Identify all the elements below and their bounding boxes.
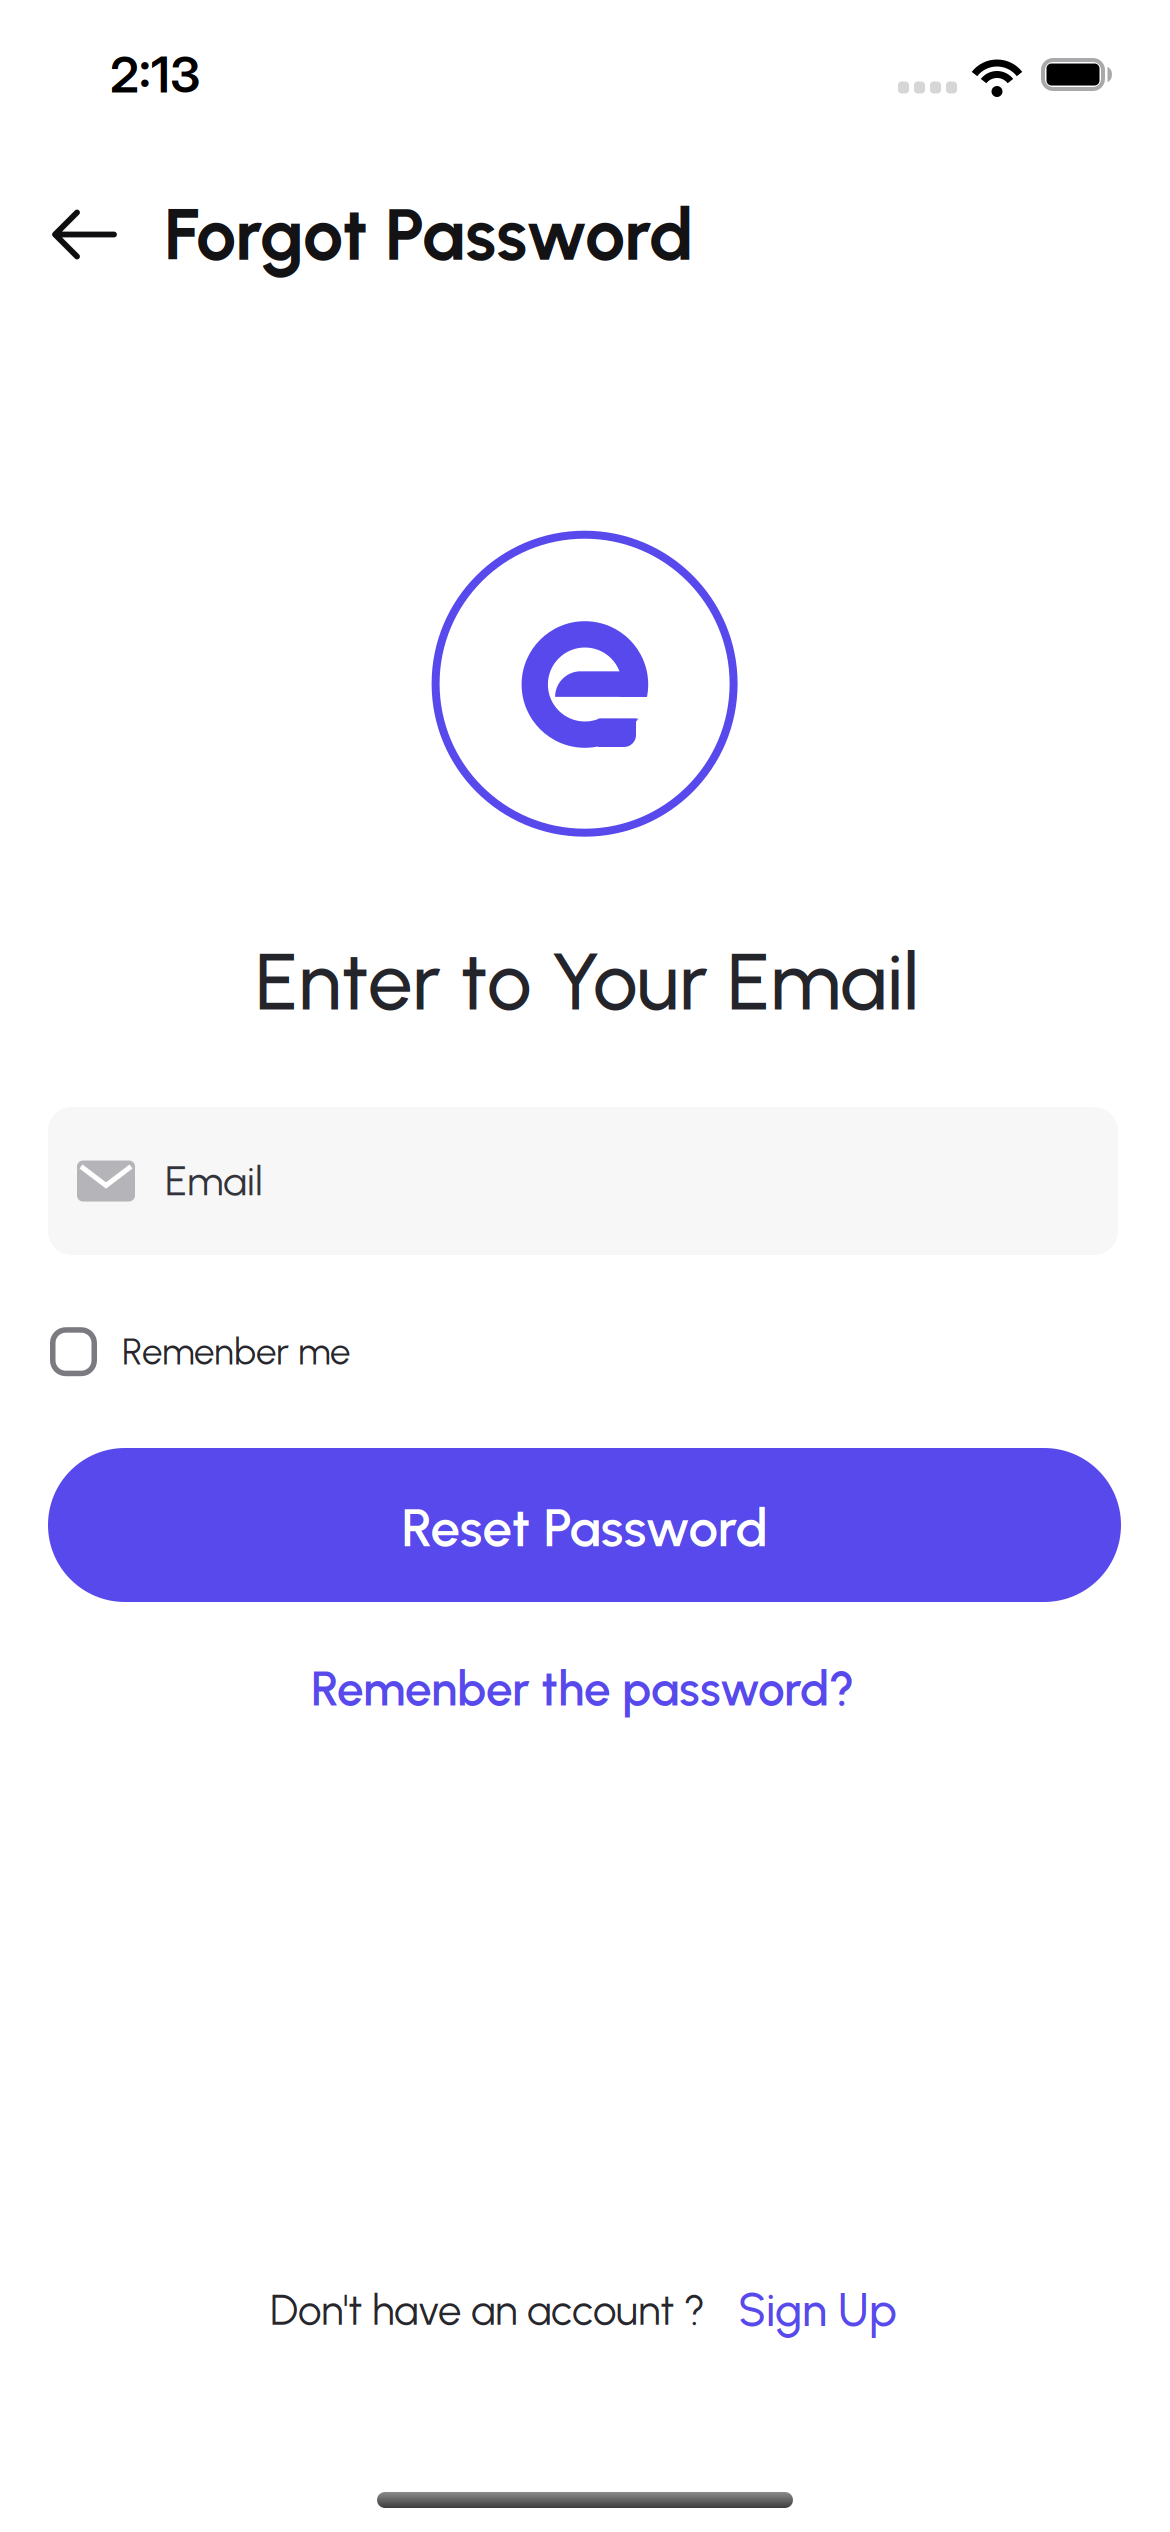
staticText: Remenber the password?: [311, 1660, 854, 1717]
button[interactable]: Back: [51, 209, 117, 259]
button[interactable]: Remenber me: [50, 1327, 350, 1376]
staticText: Reset Password: [401, 1496, 767, 1559]
staticText: 2:13: [110, 44, 200, 104]
staticText: Forgot Password: [164, 191, 694, 278]
staticText: Remenber me: [122, 1330, 350, 1374]
button[interactable]: Sign Up: [738, 2282, 897, 2337]
staticText: Don't have an account ?: [270, 2285, 705, 2335]
button[interactable]: Reset Password: [48, 1448, 1121, 1602]
button[interactable]: Email: [48, 1107, 1118, 1255]
staticText: Sign Up: [738, 2282, 897, 2337]
button[interactable]: Remenber the password?: [311, 1660, 854, 1717]
staticText: Email: [165, 1156, 263, 1205]
staticText: Enter to Your Email: [255, 934, 919, 1029]
